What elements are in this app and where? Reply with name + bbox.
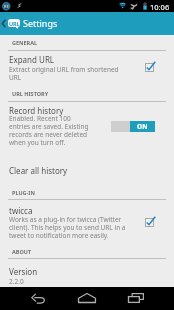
button[interactable]: Recent apps [116, 287, 156, 310]
button[interactable]: Enabled checkbox [143, 61, 156, 74]
staticText: Works as a plug-in for twicca (Twitter c… [9, 215, 127, 240]
staticText: ON [137, 122, 148, 131]
button[interactable]: Navigate up [0, 12, 21, 35]
button[interactable]: Record history switch, on [111, 121, 155, 132]
staticText: Extract original URL from shortened URL [9, 65, 127, 82]
staticText: Settings [23, 17, 58, 29]
button: URL HISTORY [12, 90, 49, 97]
button: PLUG-IN [12, 189, 35, 196]
button[interactable]: Clear all history [0, 160, 174, 180]
staticText: 10:06 [150, 2, 170, 12]
staticText: Expand URL [9, 54, 55, 65]
button[interactable]: Home [67, 287, 107, 310]
staticText: Enabled. Recent 100 entries are saved. E… [9, 114, 90, 147]
button[interactable]: Back [18, 287, 58, 310]
staticText: Clear all history [9, 165, 68, 176]
button: GENERAL [12, 39, 38, 46]
staticText: twicca [9, 205, 33, 216]
button: ABOUT [12, 248, 32, 255]
staticText: 2.2.0 [9, 277, 69, 286]
button[interactable]: Enabled checkbox [143, 216, 156, 229]
staticText: URL [9, 20, 20, 27]
staticText: Version [9, 266, 38, 277]
staticText: Record history [9, 105, 64, 116]
